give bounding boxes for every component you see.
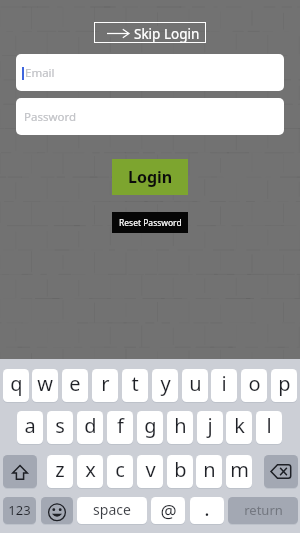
button[interactable]: Email [16,54,284,91]
button[interactable]: k [226,411,252,444]
button[interactable]: Shift [3,455,37,488]
staticText: q [10,370,23,397]
staticText: f [117,412,124,439]
button[interactable]: b [167,455,193,488]
staticText: Password [24,109,77,125]
staticText: k [234,412,245,439]
staticText: m [230,456,249,483]
button[interactable]: w [32,369,58,402]
staticText: @ [160,499,177,524]
staticText: d [84,412,97,439]
staticText: y [160,370,171,397]
button[interactable]: 123 [3,497,36,524]
button[interactable]: q [3,369,29,402]
staticText: z [55,456,65,483]
staticText: Login [128,166,173,188]
button[interactable]: r [92,369,118,402]
button[interactable]: i [211,369,237,402]
staticText: a [24,412,36,439]
staticText: i [221,370,227,397]
button[interactable]: c [107,455,133,488]
button[interactable]: p [271,369,297,402]
staticText: c [115,456,125,483]
staticText: Skip Login [134,25,200,43]
button[interactable]: Backspace [264,455,298,488]
staticText: Email [25,65,55,81]
button[interactable]: e [62,369,88,402]
button[interactable]: g [137,411,163,444]
button[interactable]: u [182,369,208,402]
staticText: n [203,456,216,483]
button[interactable]: h [167,411,193,444]
staticText: w [37,370,53,397]
staticText: v [145,456,156,483]
button[interactable]: t [122,369,148,402]
button[interactable]: m [226,455,252,488]
staticText: u [189,370,202,397]
button[interactable]: l [256,411,282,444]
button[interactable]: . [190,497,224,524]
staticText: space [93,500,131,519]
staticText: b [174,456,187,483]
staticText: p [278,370,291,397]
staticText: l [266,412,272,439]
staticText: Reset Password [119,217,182,229]
button[interactable]: Emoji [41,497,73,524]
button[interactable]: s [47,411,73,444]
staticText: o [248,370,261,397]
button[interactable]: x [77,455,103,488]
button[interactable]: return [228,497,298,524]
button[interactable]: d [77,411,103,444]
staticText: return [244,501,283,519]
button[interactable]: n [196,455,222,488]
staticText: e [69,370,81,397]
staticText: t [131,370,139,397]
button[interactable]: a [17,411,43,444]
button[interactable]: j [197,411,223,444]
button[interactable]: o [241,369,267,402]
staticText: g [144,412,157,439]
staticText: j [207,412,213,439]
button[interactable]: Reset Password [112,212,188,233]
button[interactable]: v [137,455,163,488]
button[interactable]: f [107,411,133,444]
button[interactable]: @ [151,497,185,524]
staticText: x [85,456,96,483]
button[interactable]: z [47,455,73,488]
staticText: r [101,370,110,397]
staticText: h [174,412,187,439]
button[interactable]: Skip Login [94,22,206,43]
button[interactable]: y [152,369,178,402]
staticText: s [55,412,65,439]
staticText: 123 [8,501,31,519]
button[interactable]: space [77,497,147,524]
button[interactable]: Password [16,98,284,135]
button[interactable]: Login [112,159,188,195]
staticText: . [204,497,210,522]
